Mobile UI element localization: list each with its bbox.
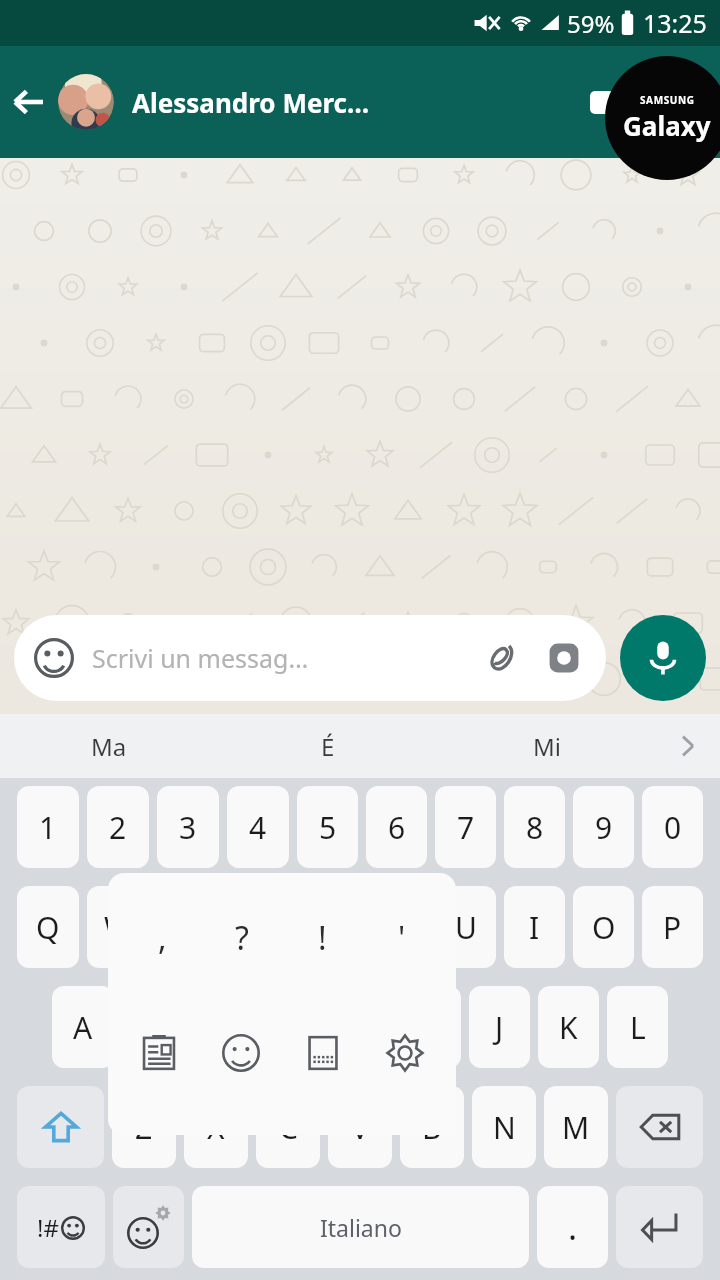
- button[interactable]: X: [184, 1086, 248, 1168]
- button[interactable]: 7: [435, 786, 496, 868]
- staticText: Z: [135, 1107, 153, 1148]
- button[interactable]: Floating keyboard: [282, 1003, 364, 1103]
- button[interactable]: S: [122, 986, 184, 1068]
- staticText: 2: [109, 807, 127, 848]
- staticText: D: [212, 1007, 234, 1048]
- button[interactable]: A: [52, 986, 114, 1068]
- button[interactable]: Emoji: [200, 1003, 282, 1103]
- button[interactable]: ,: [122, 873, 202, 1003]
- staticText: N: [493, 1107, 516, 1148]
- staticText: !: [318, 916, 327, 960]
- button[interactable]: Scrivi un messag…: [14, 615, 606, 701]
- button[interactable]: V: [328, 1086, 392, 1168]
- button[interactable]: Z: [112, 1086, 176, 1168]
- button[interactable]: Camera: [540, 634, 588, 682]
- button[interactable]: Shift: [17, 1086, 104, 1168]
- staticText: K: [559, 1007, 578, 1048]
- button[interactable]: 0: [642, 786, 703, 868]
- button[interactable]: É: [218, 714, 437, 778]
- button[interactable]: Back: [0, 46, 58, 158]
- button[interactable]: E: [157, 886, 219, 968]
- staticText: Q: [36, 907, 60, 948]
- button[interactable]: ,: [108, 873, 456, 1135]
- button[interactable]: Attach: [476, 634, 524, 682]
- staticText: 1: [39, 807, 57, 848]
- button[interactable]: !: [282, 873, 362, 1003]
- button[interactable]: 2: [87, 786, 149, 868]
- staticText: A: [73, 1007, 93, 1048]
- staticText: C: [279, 1107, 298, 1148]
- button[interactable]: Video call: [572, 46, 644, 158]
- staticText: .: [568, 1204, 578, 1250]
- button[interactable]: Settings: [364, 1003, 446, 1103]
- button[interactable]: Y: [366, 886, 427, 968]
- button[interactable]: N: [472, 1086, 536, 1168]
- button[interactable]: C: [256, 1086, 320, 1168]
- staticText: 4: [249, 807, 267, 848]
- button[interactable]: Q: [17, 886, 79, 968]
- button[interactable]: W: [87, 886, 149, 968]
- button[interactable]: H: [400, 986, 461, 1068]
- button[interactable]: ?: [202, 873, 282, 1003]
- button[interactable]: ': [362, 873, 442, 1003]
- staticText: 5: [319, 807, 337, 848]
- staticText: 6: [388, 807, 406, 848]
- button[interactable]: Backspace: [616, 1086, 703, 1168]
- staticText: Scrivi un messag…: [92, 641, 476, 675]
- button[interactable]: .: [537, 1186, 608, 1268]
- staticText: M: [562, 1107, 590, 1148]
- button[interactable]: Enter: [616, 1186, 703, 1268]
- staticText: X: [207, 1107, 225, 1148]
- button[interactable]: U: [435, 886, 496, 968]
- button[interactable]: Italiano: [192, 1186, 529, 1268]
- button[interactable]: P: [642, 886, 703, 968]
- button[interactable]: 8: [504, 786, 565, 868]
- button[interactable]: Symbols: [17, 1186, 105, 1268]
- button[interactable]: Emoji keyboard: [113, 1186, 184, 1268]
- staticText: T: [319, 907, 336, 948]
- button[interactable]: Record voice message: [620, 615, 706, 701]
- button[interactable]: 4: [227, 786, 289, 868]
- button[interactable]: M: [544, 1086, 608, 1168]
- button[interactable]: I: [504, 886, 565, 968]
- staticText: SAMSUNG: [640, 93, 695, 107]
- button[interactable]: 5: [297, 786, 358, 868]
- button[interactable]: Alessandro Merc…: [58, 46, 572, 158]
- staticText: U: [455, 907, 477, 948]
- button[interactable]: 9: [573, 786, 634, 868]
- staticText: J: [495, 1007, 504, 1048]
- button[interactable]: Mi: [437, 714, 656, 778]
- button[interactable]: B: [400, 1086, 464, 1168]
- staticText: Y: [388, 907, 405, 948]
- staticText: ': [398, 916, 406, 960]
- button[interactable]: F: [262, 986, 323, 1068]
- staticText: 59%: [567, 7, 615, 40]
- button[interactable]: 1: [17, 786, 79, 868]
- staticText: Alessandro Merc…: [132, 85, 370, 120]
- button[interactable]: J: [469, 986, 530, 1068]
- staticText: Mi: [533, 730, 561, 763]
- button[interactable]: 6: [366, 786, 427, 868]
- button[interactable]: D: [192, 986, 254, 1068]
- button[interactable]: 3: [157, 786, 219, 868]
- staticText: 7: [457, 807, 475, 848]
- staticText: O: [592, 907, 616, 948]
- button[interactable]: Voice call: [644, 46, 720, 158]
- button[interactable]: More suggestions: [656, 714, 720, 778]
- staticText: 13:25: [643, 6, 707, 40]
- button[interactable]: O: [573, 886, 634, 968]
- button[interactable]: G: [331, 986, 392, 1068]
- staticText: B: [422, 1107, 442, 1148]
- button[interactable]: K: [538, 986, 599, 1068]
- button[interactable]: R: [227, 886, 289, 968]
- button[interactable]: L: [607, 986, 668, 1068]
- button[interactable]: T: [297, 886, 358, 968]
- button[interactable]: Ma: [0, 714, 218, 778]
- staticText: Galaxy: [623, 108, 711, 143]
- button[interactable]: Clipboard: [118, 1003, 200, 1103]
